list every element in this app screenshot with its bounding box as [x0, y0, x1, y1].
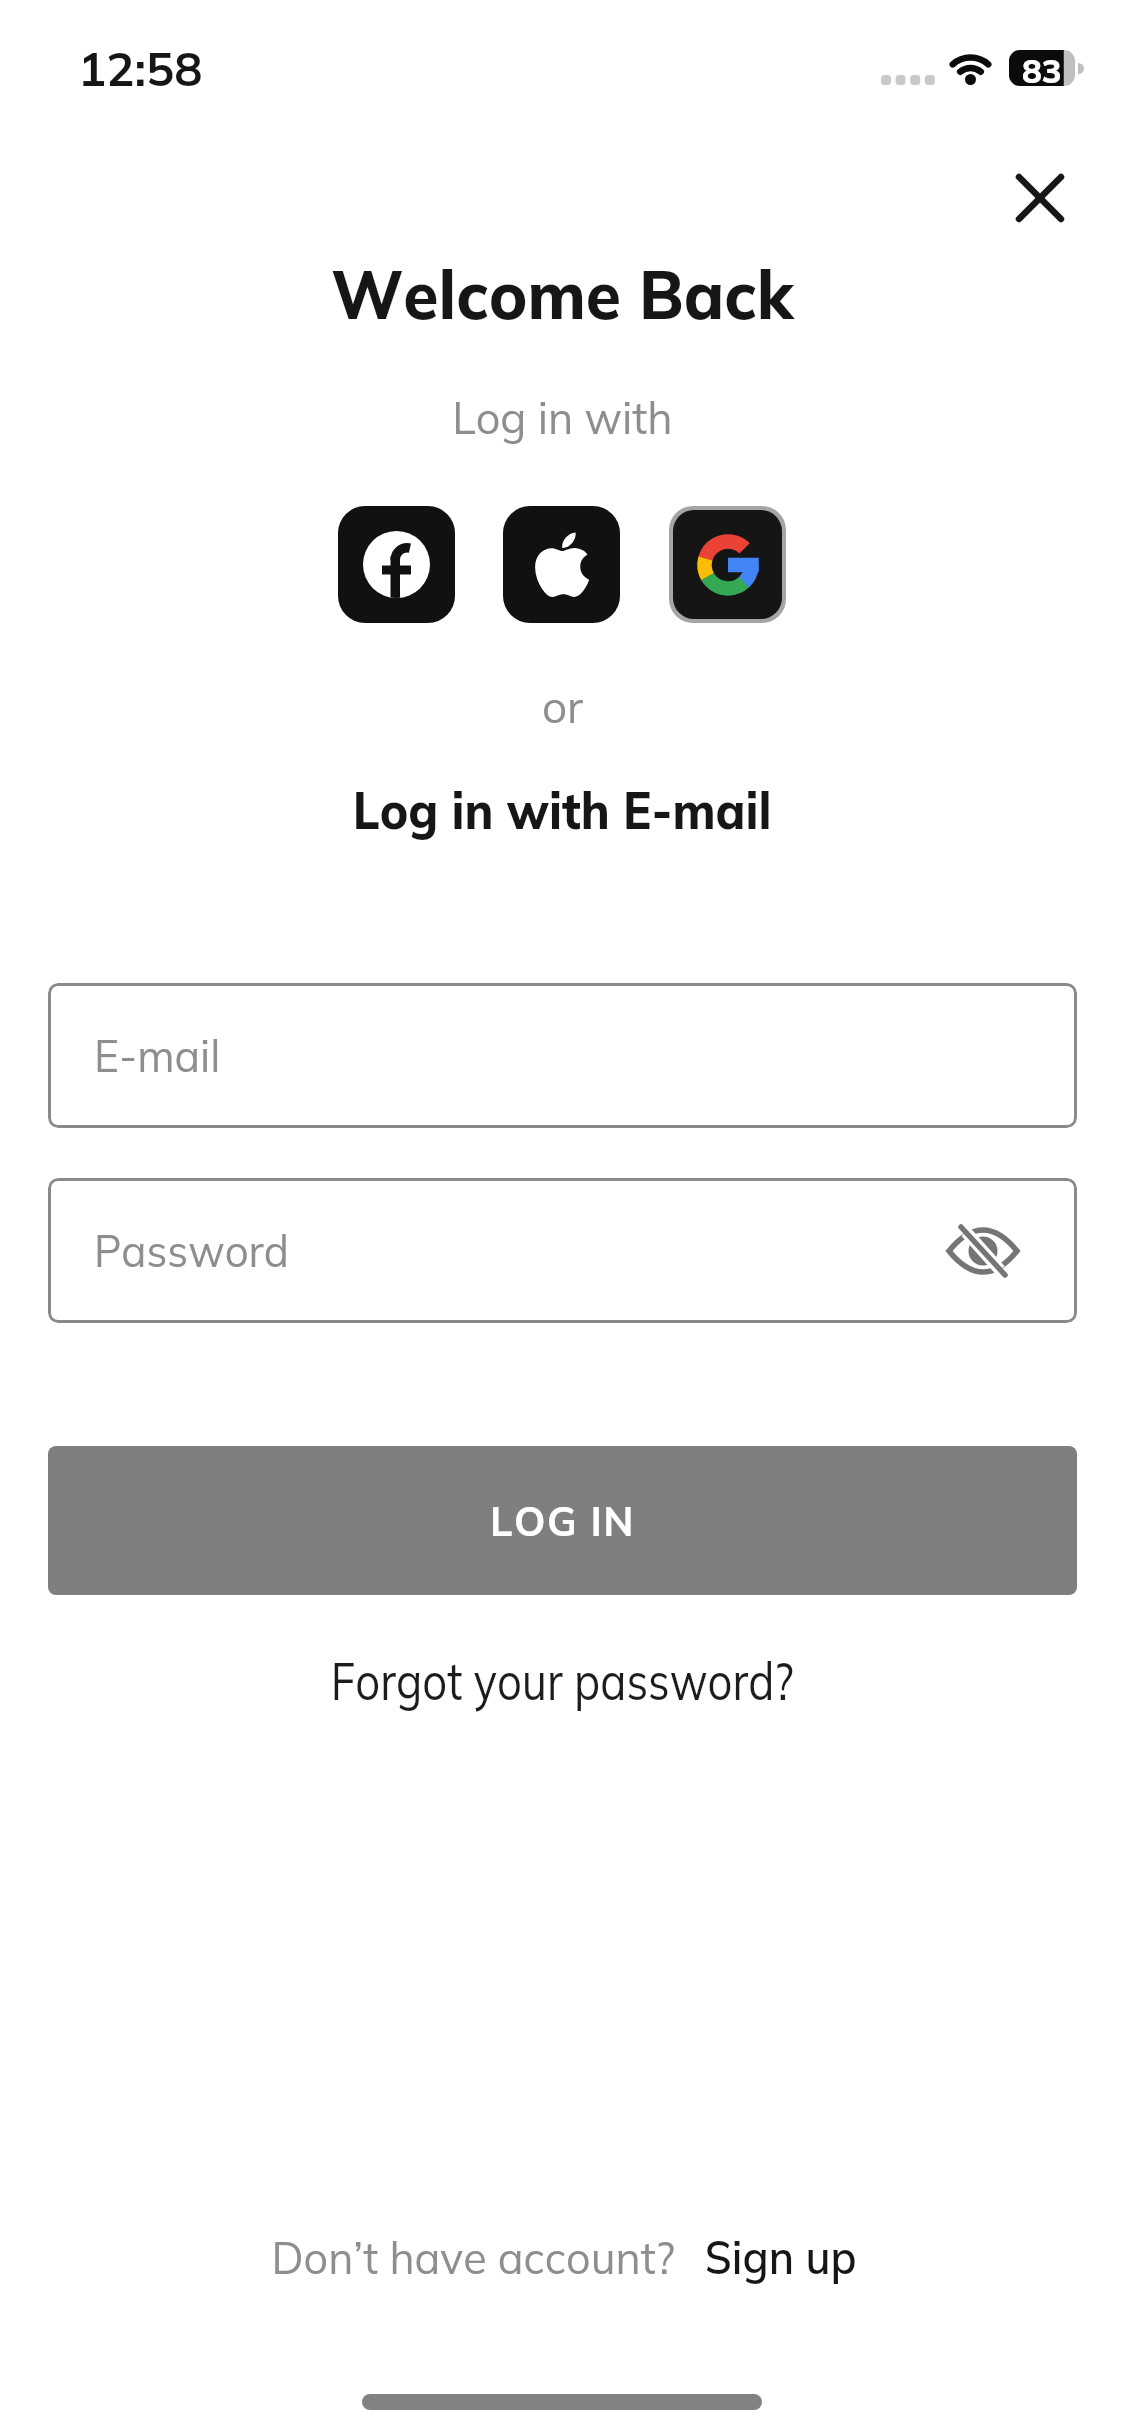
- staticText: or: [542, 679, 584, 734]
- button[interactable]: [669, 506, 786, 623]
- staticText: Sign up: [705, 2228, 857, 2286]
- button[interactable]: [938, 1206, 1028, 1296]
- button[interactable]: E-mail: [48, 983, 1077, 1128]
- staticText: 83: [1022, 50, 1062, 86]
- staticText: Don’t have account?: [271, 2229, 675, 2285]
- staticText: Password: [94, 1223, 290, 1278]
- staticText: Forgot your password?: [331, 1648, 794, 1713]
- button[interactable]: Password: [48, 1178, 1077, 1323]
- staticText: E-mail: [94, 1028, 221, 1083]
- button[interactable]: [1002, 160, 1078, 236]
- button[interactable]: [338, 506, 455, 623]
- staticText: Log in with E-mail: [353, 777, 772, 842]
- button[interactable]: LOG IN: [48, 1446, 1077, 1595]
- staticText: Welcome Back: [331, 251, 794, 336]
- staticText: LOG IN: [490, 1496, 635, 1546]
- button[interactable]: [503, 506, 620, 623]
- button[interactable]: Forgot your password?: [286, 1648, 839, 1713]
- staticText: Log in with: [452, 390, 673, 445]
- button[interactable]: Sign up: [699, 2228, 863, 2286]
- staticText: 12:58: [78, 39, 203, 89]
